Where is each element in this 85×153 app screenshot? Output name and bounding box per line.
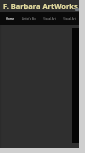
staticText: Visual Art <box>43 17 56 21</box>
button[interactable]: Home <box>0 12 19 25</box>
button[interactable]: Visual Art <box>39 12 59 25</box>
button[interactable]: Artist's Bio <box>19 12 39 25</box>
staticText: Home <box>6 17 14 21</box>
staticText: Visual Art <box>63 17 76 21</box>
button[interactable]: Visual Art <box>59 12 79 25</box>
button[interactable]: More options <box>75 8 79 11</box>
staticText: Artist's Bio <box>22 17 36 21</box>
staticText: F. Barbara ArtWorks <box>3 1 78 11</box>
